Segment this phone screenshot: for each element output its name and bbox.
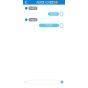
staticText: Alex Chen	[36, 0, 54, 5]
staticText: Sure	[50, 12, 57, 16]
staticText: Hey	[30, 18, 35, 21]
staticText: ‹	[24, 0, 27, 6]
staticText: Sure	[45, 24, 52, 27]
staticText: Hey	[30, 7, 35, 10]
button[interactable]: Back	[23, 0, 29, 5]
